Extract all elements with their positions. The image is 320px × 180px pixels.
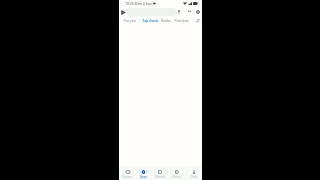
button[interactable]: Microphone bbox=[176, 9, 181, 14]
staticText: Kids bbox=[191, 175, 197, 179]
button[interactable]: Games bbox=[119, 166, 135, 180]
staticText: For you bbox=[124, 18, 136, 22]
staticText: Premium bbox=[174, 18, 189, 22]
button[interactable]: Movies bbox=[151, 166, 168, 180]
button[interactable]: Kids bbox=[185, 166, 202, 180]
staticText: Movies bbox=[155, 175, 165, 179]
button[interactable]: Books bbox=[168, 166, 185, 180]
staticText: Books bbox=[172, 175, 181, 179]
button[interactable]: Google Play bbox=[120, 9, 126, 15]
button[interactable]: Filter bbox=[195, 18, 200, 23]
staticText: Apps bbox=[140, 175, 147, 179]
button[interactable]: Apps bbox=[135, 166, 151, 180]
staticText: Books bbox=[161, 18, 171, 22]
staticText: 10:35 Mon 4 Sep bbox=[125, 1, 152, 6]
staticText: Top charts bbox=[142, 18, 159, 22]
button[interactable]: Books bbox=[157, 16, 175, 24]
button[interactable]: Notifications bbox=[187, 9, 192, 14]
button[interactable]: Account bbox=[195, 9, 200, 14]
button[interactable]: For you bbox=[121, 16, 139, 24]
staticText: Games bbox=[122, 175, 132, 179]
button[interactable]: Top charts bbox=[141, 16, 159, 24]
button[interactable]: Premium bbox=[172, 16, 190, 24]
